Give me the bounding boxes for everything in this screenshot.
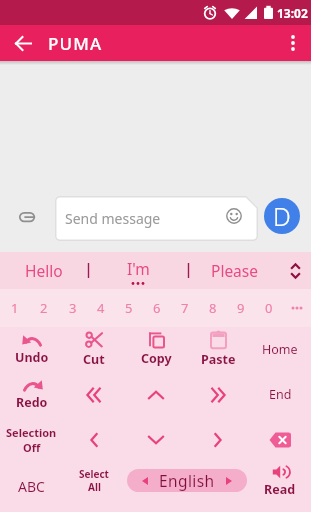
staticText: I'm <box>127 258 150 279</box>
staticText: 0 <box>265 299 273 317</box>
staticText: ABC <box>18 477 45 496</box>
button[interactable] <box>187 372 249 417</box>
staticText: All <box>88 480 101 494</box>
button[interactable]: 1 <box>0 289 29 327</box>
button[interactable]: Undo <box>0 327 63 372</box>
staticText: Select <box>79 467 109 481</box>
staticText: Off <box>23 440 41 455</box>
staticText: English <box>159 470 215 491</box>
staticText: End <box>269 386 292 403</box>
button[interactable]: 7 <box>171 289 199 327</box>
staticText: Cut <box>83 351 105 368</box>
staticText: 5 <box>125 299 133 317</box>
staticText: 6 <box>153 299 161 317</box>
button[interactable]: 9 <box>227 289 255 327</box>
staticText: 1 <box>11 299 19 317</box>
button[interactable] <box>63 417 125 462</box>
button[interactable]: D <box>264 198 300 234</box>
button[interactable] <box>63 372 125 417</box>
button[interactable]: I'm <box>88 252 188 289</box>
staticText: 4 <box>97 299 105 317</box>
button[interactable] <box>125 417 187 462</box>
staticText: 13:02 <box>277 5 308 21</box>
button[interactable]: Hello <box>0 252 88 289</box>
button[interactable]: Paste <box>187 327 249 372</box>
staticText: Read <box>264 481 296 498</box>
button[interactable]: 6 <box>143 289 171 327</box>
button[interactable] <box>283 289 311 327</box>
button[interactable]: 5 <box>115 289 143 327</box>
button[interactable]: English <box>127 469 247 492</box>
staticText: Paste <box>201 351 236 368</box>
button[interactable] <box>187 417 249 462</box>
staticText: Hello <box>25 260 63 281</box>
button[interactable] <box>249 417 311 462</box>
button[interactable] <box>280 252 311 289</box>
button[interactable]: Read <box>249 462 311 499</box>
button[interactable]: Redo <box>0 372 63 417</box>
button[interactable]: End <box>249 372 311 417</box>
button[interactable]: 8 <box>199 289 227 327</box>
button[interactable]: Copy <box>125 327 187 372</box>
staticText: 8 <box>209 299 217 317</box>
button[interactable]: Select <box>63 462 125 499</box>
staticText: Please <box>211 260 258 281</box>
button[interactable]: ABC <box>0 462 63 499</box>
button[interactable]: Selection <box>0 417 63 462</box>
button[interactable]: 2 <box>29 289 58 327</box>
staticText: 3 <box>69 299 77 317</box>
staticText: D <box>273 199 291 233</box>
button[interactable] <box>125 372 187 417</box>
button[interactable]: 0 <box>255 289 283 327</box>
staticText: 2 <box>40 299 48 317</box>
button[interactable]: Send message <box>56 197 257 240</box>
staticText: Send message <box>65 209 161 228</box>
staticText: Selection <box>6 425 57 440</box>
staticText: 7 <box>181 299 189 317</box>
staticText: PUMA <box>48 32 103 55</box>
button[interactable] <box>5 25 41 61</box>
button[interactable]: 3 <box>58 289 87 327</box>
button[interactable]: Cut <box>63 327 125 372</box>
staticText: Redo <box>16 394 48 411</box>
button[interactable] <box>275 25 311 61</box>
staticText: Home <box>262 341 298 358</box>
button[interactable]: Home <box>249 327 311 372</box>
staticText: Copy <box>141 350 172 367</box>
staticText: 9 <box>237 299 245 317</box>
button[interactable] <box>226 208 242 224</box>
staticText: Undo <box>15 349 49 366</box>
button[interactable]: 4 <box>87 289 115 327</box>
button[interactable]: Please <box>188 252 280 289</box>
